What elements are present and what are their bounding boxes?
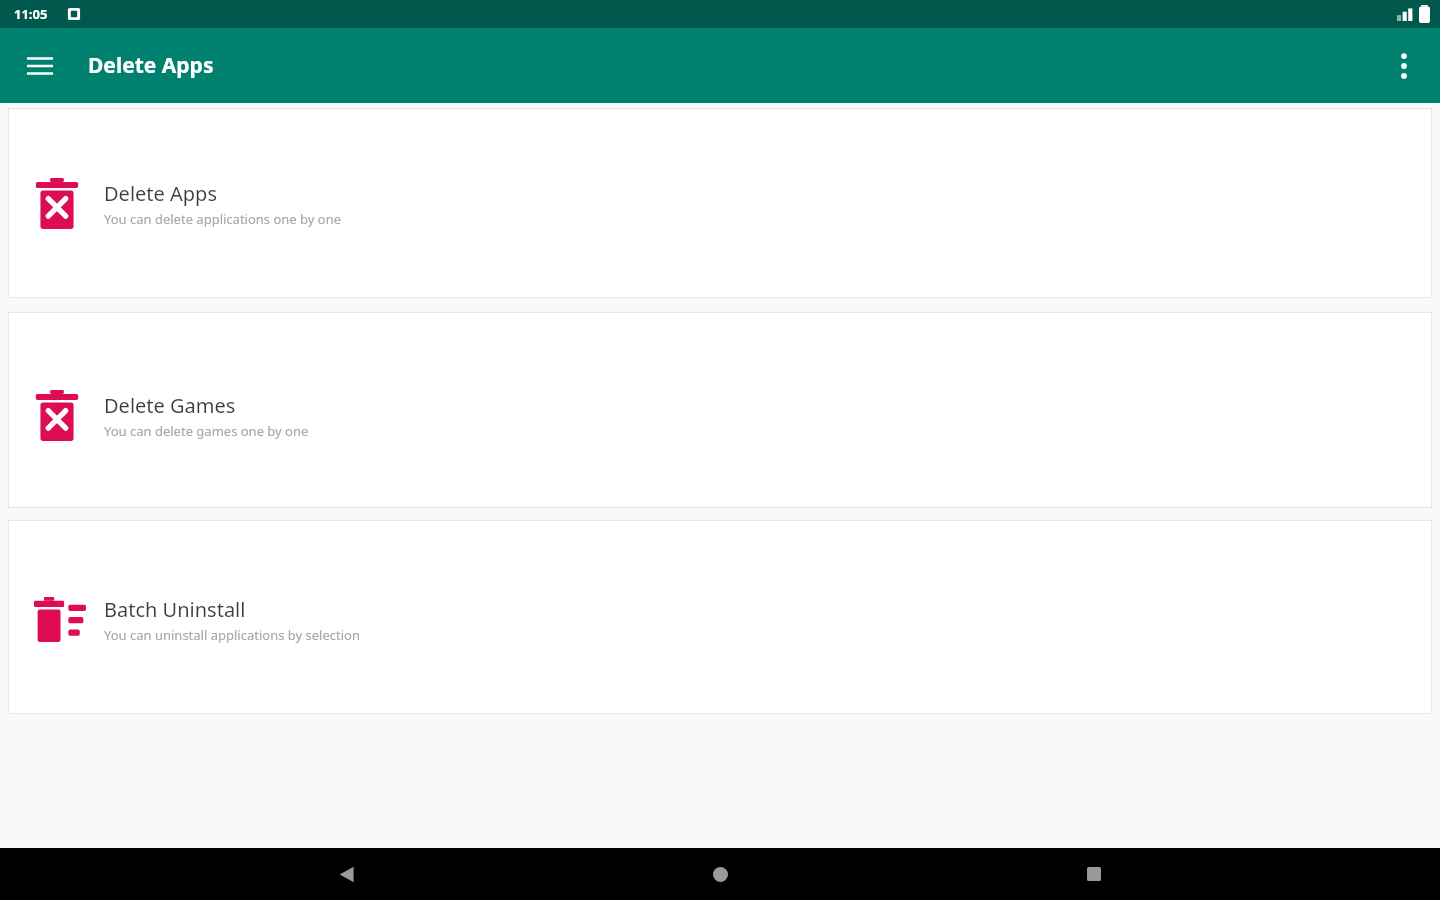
- staticText: Delete Apps: [104, 180, 217, 207]
- staticText: Delete Games: [104, 392, 236, 419]
- button[interactable]: Delete Games: [8, 312, 1432, 508]
- staticText: You can uninstall applications by select…: [104, 626, 360, 644]
- button[interactable]: Open navigation menu: [14, 40, 66, 92]
- staticText: Delete Apps: [88, 51, 214, 80]
- staticText: You can delete applications one by one: [104, 210, 342, 228]
- button[interactable]: Home: [692, 848, 748, 900]
- button[interactable]: Back: [318, 848, 374, 900]
- staticText: 11:05: [14, 5, 48, 23]
- button[interactable]: Recent apps: [1066, 848, 1122, 900]
- staticText: Batch Uninstall: [104, 596, 246, 623]
- button[interactable]: Batch Uninstall: [8, 520, 1432, 714]
- button[interactable]: Delete Apps: [8, 108, 1432, 298]
- button[interactable]: More options: [1378, 40, 1430, 92]
- staticText: You can delete games one by one: [104, 422, 309, 440]
